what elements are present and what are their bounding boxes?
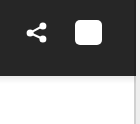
- button[interactable]: Share: [24, 19, 50, 46]
- button[interactable]: Stop: [75, 20, 102, 45]
